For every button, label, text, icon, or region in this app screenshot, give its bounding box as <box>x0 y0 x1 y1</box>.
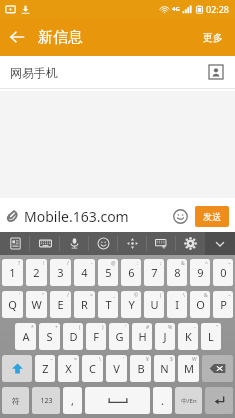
staticText: H <box>138 329 147 344</box>
button[interactable]: Emoji <box>168 204 192 228</box>
button[interactable]: 中/En <box>175 387 202 414</box>
button[interactable]: Keyboard layout <box>30 232 60 255</box>
button[interactable]: ¥ <box>130 355 151 382</box>
button[interactable]: " <box>26 291 47 318</box>
button[interactable]: / <box>50 291 71 318</box>
button[interactable]: 符 <box>2 387 29 414</box>
button[interactable]: Voice input <box>60 232 89 255</box>
staticText: 新信息 <box>38 28 83 47</box>
button[interactable]: # <box>132 323 152 350</box>
staticText: K <box>185 329 192 344</box>
button[interactable]: | <box>144 291 164 318</box>
button[interactable]: @ <box>98 259 118 286</box>
button[interactable]: , <box>63 387 82 414</box>
staticText: L <box>208 329 214 344</box>
button[interactable]: Input settings <box>147 232 176 255</box>
button[interactable]: % <box>155 323 175 350</box>
button[interactable]: Hide keyboard <box>205 232 235 255</box>
staticText: ( <box>79 324 81 331</box>
button[interactable]: Emoji <box>89 232 118 255</box>
staticText: T <box>105 297 112 312</box>
button[interactable]: Clipboard <box>0 232 30 255</box>
staticText: ~ <box>228 292 231 299</box>
button[interactable]: Pick contact <box>205 61 227 83</box>
button[interactable]: W <box>178 355 199 382</box>
staticText: * <box>31 324 34 331</box>
button[interactable]: / <box>50 259 71 286</box>
button[interactable]: Attach <box>0 204 24 228</box>
button[interactable]: ~ <box>213 291 233 318</box>
button[interactable]: Back <box>0 20 34 54</box>
staticText: , <box>71 393 74 408</box>
button[interactable]: Settings <box>176 232 205 255</box>
button[interactable]: . <box>153 387 172 414</box>
button[interactable]: ! <box>26 259 47 286</box>
staticText: ; <box>160 260 162 267</box>
staticText: | <box>159 292 162 299</box>
button[interactable]: - <box>178 323 198 350</box>
button[interactable]: ? <box>2 259 23 286</box>
button[interactable]: ~ <box>213 259 233 286</box>
staticText: - <box>91 260 93 267</box>
button[interactable]: ^ <box>190 259 210 286</box>
button[interactable]: & <box>190 291 210 318</box>
staticText: Q <box>8 297 17 312</box>
button[interactable]: 发送 <box>195 206 229 227</box>
staticText: A <box>22 329 30 344</box>
button[interactable]: & <box>167 259 187 286</box>
button[interactable]: ' <box>106 355 127 382</box>
button[interactable]: 123 <box>32 387 60 414</box>
button[interactable]: 更多 <box>200 25 226 50</box>
button[interactable]: ' <box>2 291 23 318</box>
staticText: S <box>46 329 53 344</box>
staticText: N <box>160 361 169 376</box>
staticText: " <box>42 292 45 299</box>
button[interactable]: 网易手机 <box>0 56 235 88</box>
staticText: W <box>192 356 197 363</box>
staticText: 发送 <box>203 211 221 222</box>
button[interactable] <box>205 387 233 414</box>
staticText: O <box>196 297 205 312</box>
staticText: Y <box>128 297 135 312</box>
staticText: P <box>220 297 227 312</box>
button[interactable] <box>2 355 32 382</box>
button[interactable] <box>85 387 150 414</box>
button[interactable]: Move cursor <box>118 232 147 255</box>
staticText: / <box>67 292 69 299</box>
staticText: \ <box>99 356 101 363</box>
staticText: M <box>184 361 194 376</box>
button[interactable]: ` <box>109 323 129 350</box>
button[interactable]: \ <box>82 355 103 382</box>
button[interactable]: : <box>121 259 141 286</box>
button[interactable]: ( <box>63 323 83 350</box>
button[interactable]: © <box>121 291 141 318</box>
button[interactable]: + <box>39 323 60 350</box>
staticText: 02:28 <box>206 3 230 15</box>
staticText: 3 <box>57 265 64 280</box>
staticText: + <box>55 324 58 331</box>
staticText: F <box>93 329 99 344</box>
staticText: 中/En <box>181 397 197 405</box>
button[interactable]: * <box>15 323 36 350</box>
button[interactable]: \ <box>167 291 187 318</box>
staticText: I <box>175 297 179 312</box>
button[interactable]: ~ <box>35 355 55 382</box>
button[interactable]: $ <box>154 355 175 382</box>
staticText: 9 <box>197 265 204 280</box>
staticText: ~ <box>50 356 53 363</box>
button[interactable]: - <box>74 259 95 286</box>
staticText: / <box>67 260 69 267</box>
staticText: 0 <box>220 265 227 280</box>
button[interactable]: ¤ <box>58 355 79 382</box>
staticText: X <box>65 361 72 376</box>
staticText: Z <box>42 361 49 376</box>
button[interactable]: = <box>74 291 95 318</box>
button[interactable]: _ <box>98 291 118 318</box>
button[interactable] <box>202 355 233 382</box>
staticText: R <box>81 297 88 312</box>
staticText: ) <box>102 324 104 331</box>
button[interactable]: " <box>201 323 221 350</box>
button[interactable]: ) <box>86 323 106 350</box>
button[interactable]: ; <box>144 259 164 286</box>
staticText: . <box>161 393 164 408</box>
